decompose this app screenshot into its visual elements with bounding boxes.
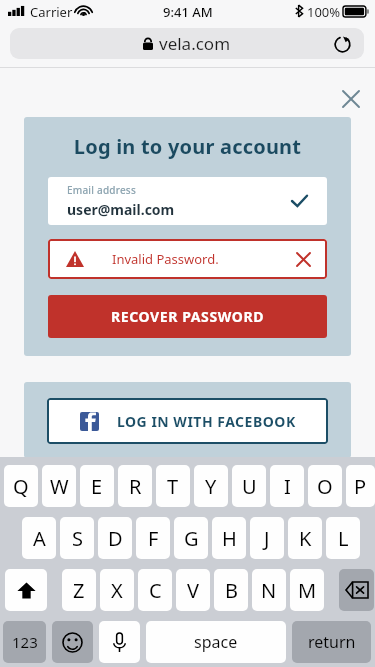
button[interactable]: Shift: [5, 569, 47, 611]
staticText: RECOVER PASSWORD: [111, 307, 265, 326]
button[interactable]: D: [98, 517, 132, 559]
button[interactable]: O: [308, 465, 342, 507]
staticText: L: [338, 525, 349, 552]
staticText: U: [242, 473, 257, 500]
staticText: Q: [13, 473, 29, 500]
button[interactable]: L: [326, 517, 360, 559]
staticText: X: [111, 577, 123, 604]
staticText: Y: [205, 473, 217, 500]
button[interactable]: Reload: [328, 30, 356, 58]
button[interactable]: X: [100, 569, 134, 611]
button[interactable]: I: [270, 465, 304, 507]
button[interactable]: return: [292, 621, 371, 663]
button[interactable]: 123: [3, 621, 46, 663]
staticText: F: [148, 525, 159, 552]
button[interactable]: K: [288, 517, 322, 559]
staticText: Email address: [67, 183, 136, 197]
button[interactable]: LOG IN WITH FACEBOOK: [47, 398, 328, 444]
button[interactable]: Dictation: [99, 621, 140, 663]
button[interactable]: vela.com: [10, 28, 364, 59]
staticText: K: [299, 525, 312, 552]
staticText: B: [225, 577, 238, 604]
staticText: H: [222, 525, 237, 552]
staticText: LOG IN WITH FACEBOOK: [117, 412, 296, 431]
button[interactable]: V: [176, 569, 210, 611]
button[interactable]: Close: [338, 86, 364, 112]
staticText: V: [187, 577, 199, 604]
button[interactable]: R: [118, 465, 152, 507]
staticText: Invalid Password.: [112, 250, 219, 268]
button[interactable]: N: [252, 569, 286, 611]
button[interactable]: S: [60, 517, 94, 559]
button[interactable]: Dismiss error: [291, 247, 315, 271]
staticText: C: [149, 577, 162, 604]
button[interactable]: W: [42, 465, 76, 507]
staticText: E: [91, 473, 103, 500]
button[interactable]: G: [174, 517, 208, 559]
button[interactable]: J: [250, 517, 284, 559]
button[interactable]: H: [212, 517, 246, 559]
staticText: O: [317, 473, 333, 500]
button[interactable]: Z: [62, 569, 96, 611]
staticText: P: [354, 473, 367, 500]
button[interactable]: Backspace: [339, 569, 374, 611]
staticText: Log in to your account: [24, 133, 351, 160]
staticText: return: [308, 631, 356, 653]
staticText: 100%: [307, 3, 341, 21]
staticText: W: [50, 473, 69, 500]
button[interactable]: U: [232, 465, 266, 507]
staticText: R: [129, 473, 142, 500]
staticText: Z: [73, 577, 85, 604]
button[interactable]: E: [80, 465, 114, 507]
staticText: 9:41 AM: [163, 3, 213, 21]
button[interactable]: P: [346, 465, 375, 507]
staticText: D: [108, 525, 123, 552]
button[interactable]: space: [146, 621, 286, 663]
button[interactable]: M: [290, 569, 324, 611]
button[interactable]: RECOVER PASSWORD: [48, 295, 327, 338]
staticText: S: [72, 525, 83, 552]
button[interactable]: Y: [194, 465, 228, 507]
staticText: user@mail.com: [67, 200, 175, 219]
staticText: G: [184, 525, 199, 552]
button[interactable]: A: [22, 517, 56, 559]
staticText: I: [284, 473, 291, 500]
staticText: M: [298, 577, 317, 604]
button[interactable]: Q: [4, 465, 38, 507]
staticText: J: [264, 525, 270, 552]
button[interactable]: Email address: [48, 177, 327, 225]
staticText: Carrier: [30, 3, 73, 21]
staticText: T: [167, 473, 179, 500]
button[interactable]: Emoji: [52, 621, 93, 663]
staticText: 123: [12, 632, 38, 652]
button[interactable]: F: [136, 517, 170, 559]
button[interactable]: B: [214, 569, 248, 611]
button[interactable]: C: [138, 569, 172, 611]
staticText: vela.com: [159, 32, 231, 55]
staticText: space: [194, 631, 238, 653]
staticText: A: [33, 525, 46, 552]
staticText: N: [261, 577, 277, 604]
button[interactable]: T: [156, 465, 190, 507]
